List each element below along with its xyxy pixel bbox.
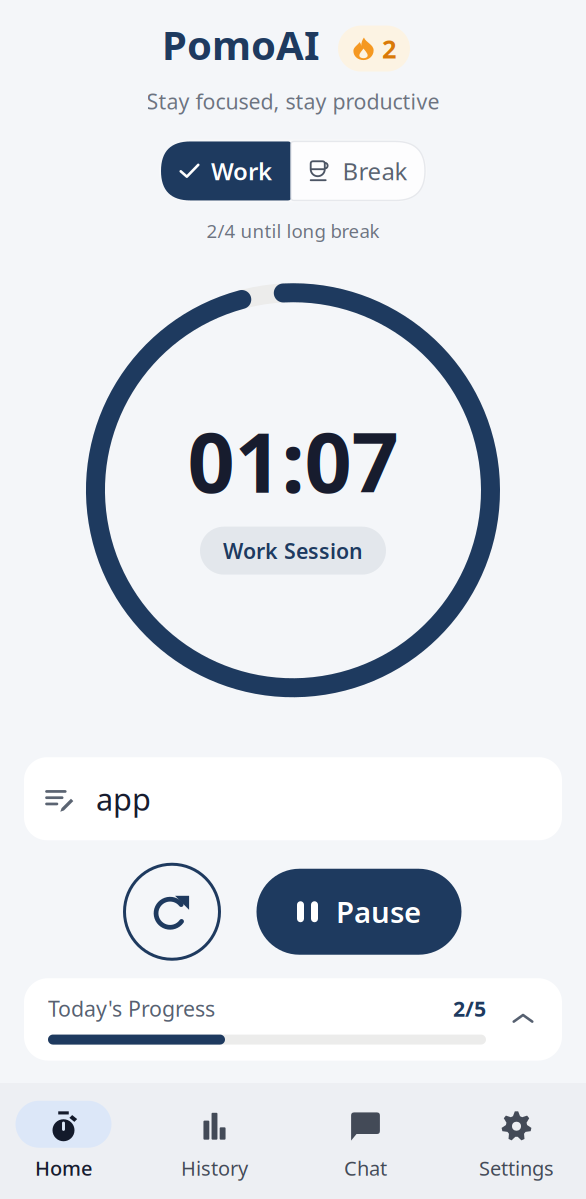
button[interactable]: Break: [291, 141, 425, 200]
staticText: Break: [342, 155, 407, 187]
button[interactable]: Home: [0, 1081, 139, 1199]
staticText: 2/5: [453, 994, 486, 1022]
staticText: Work Session: [223, 536, 363, 565]
staticText: Settings: [479, 1155, 554, 1181]
staticText: 2: [382, 32, 396, 65]
button[interactable]: Reset timer: [124, 864, 219, 959]
staticText: Today's Progress: [48, 994, 215, 1022]
staticText: Work: [211, 155, 272, 187]
button[interactable]: Settings: [441, 1081, 586, 1199]
button[interactable]: Chat: [290, 1081, 441, 1199]
button[interactable]: Pause: [256, 869, 461, 955]
button[interactable]: History: [139, 1081, 290, 1199]
staticText: Chat: [344, 1155, 387, 1181]
staticText: History: [181, 1155, 248, 1181]
staticText: app: [96, 778, 151, 819]
staticText: 01:07: [187, 406, 398, 516]
staticText: Home: [35, 1155, 92, 1181]
staticText: Stay focused, stay productive: [146, 87, 439, 115]
button[interactable]: Work: [161, 141, 291, 200]
staticText: Pause: [336, 892, 421, 931]
staticText: PomoAI: [162, 18, 320, 71]
staticText: 2/4 until long break: [206, 218, 379, 243]
button[interactable]: Today's Progress: [24, 978, 562, 1060]
